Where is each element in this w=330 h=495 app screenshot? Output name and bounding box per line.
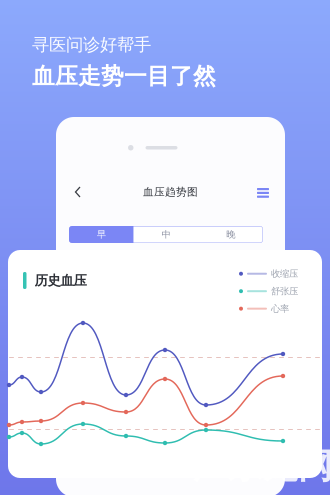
staticText: 舒张压 [271, 285, 298, 297]
staticText: 心率 [271, 303, 289, 314]
button[interactable]: Menu [257, 184, 270, 200]
staticText: 血压趋势图 [143, 185, 198, 198]
staticText: 血压走势一目了然 [32, 62, 216, 90]
button[interactable]: Back [71, 184, 85, 200]
staticText: 晚 [226, 229, 235, 240]
staticText: 历史血压 [34, 272, 86, 289]
staticText: 早 [97, 229, 106, 240]
staticText: 广东龙网 [193, 445, 330, 488]
button[interactable]: 中 [134, 226, 198, 243]
staticText: 收缩压 [271, 268, 298, 279]
staticText: 寻医问诊好帮手 [32, 34, 151, 55]
staticText: 中 [161, 229, 170, 240]
button[interactable]: 早 [69, 226, 134, 243]
button[interactable]: 晚 [198, 226, 263, 243]
